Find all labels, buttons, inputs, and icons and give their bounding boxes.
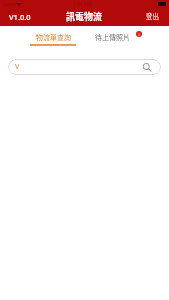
button[interactable]: V bbox=[8, 59, 161, 75]
other: Search bbox=[143, 63, 152, 72]
button[interactable]: 物流單查詢 bbox=[23, 26, 83, 59]
staticText: V1.0.0 bbox=[9, 12, 31, 22]
staticText: 訊電物流 bbox=[66, 10, 103, 23]
staticText: V bbox=[15, 62, 20, 72]
staticText: 0 bbox=[138, 32, 141, 37]
staticText: 1:34 AM bbox=[73, 1, 92, 8]
button[interactable]: 待上傳照片 bbox=[83, 26, 141, 59]
staticText: 登出 bbox=[146, 12, 159, 21]
staticText: 待上傳照片 bbox=[95, 32, 130, 42]
staticText: 物流單查詢 bbox=[36, 32, 71, 42]
staticText: Carrier bbox=[2, 1, 17, 7]
button[interactable]: 登出 bbox=[136, 9, 169, 24]
